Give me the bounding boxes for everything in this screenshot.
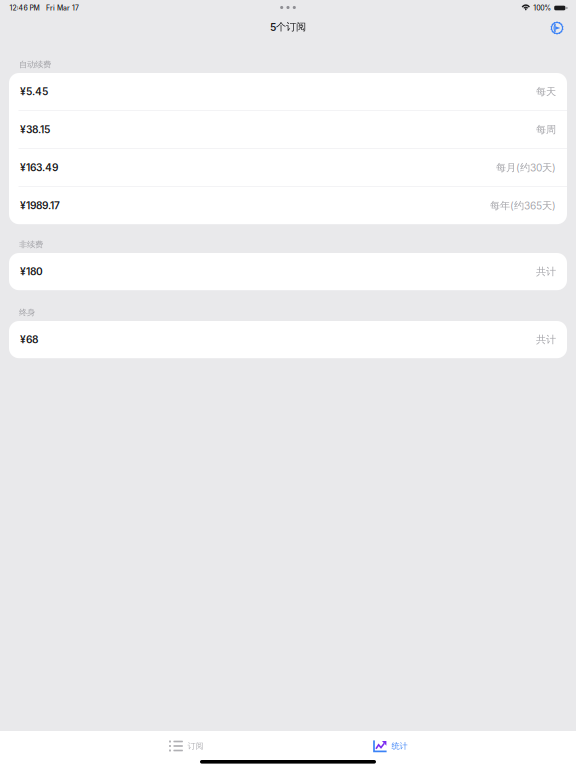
staticText: ¥38.15	[20, 123, 50, 136]
staticText: ¥163.49	[20, 161, 58, 174]
staticText: 每月(约30天)	[496, 161, 556, 174]
button[interactable]: ¥1989.17	[9, 187, 567, 224]
staticText: ¥68	[20, 333, 38, 346]
button[interactable]: ¥163.49	[9, 149, 567, 186]
button[interactable]: ¥38.15	[9, 111, 567, 148]
staticText: 每年(约365天)	[490, 199, 556, 212]
staticText: 100%	[533, 4, 551, 12]
button[interactable]: ¥68	[9, 321, 567, 358]
staticText: 12:46 PM	[9, 4, 39, 12]
staticText: 终身	[19, 307, 35, 318]
staticText: ¥180	[20, 265, 43, 278]
button[interactable]: 统计	[369, 735, 412, 757]
staticText: 5个订阅	[270, 21, 306, 33]
staticText: 每周	[536, 123, 556, 136]
staticText: 共计	[536, 333, 556, 346]
button[interactable]: Settings	[542, 13, 572, 43]
staticText: ¥1989.17	[20, 199, 60, 212]
button[interactable]: 订阅	[165, 735, 208, 757]
button[interactable]: ¥5.45	[9, 73, 567, 110]
button[interactable]: ¥180	[9, 253, 567, 290]
staticText: 每天	[536, 85, 556, 98]
staticText: 非续费	[19, 239, 43, 250]
staticText: 自动续费	[19, 59, 51, 70]
staticText: 订阅	[188, 741, 204, 751]
staticText: 共计	[536, 265, 556, 278]
staticText: ¥5.45	[20, 85, 48, 98]
staticText: Fri Mar 17	[46, 4, 79, 12]
staticText: 统计	[392, 741, 408, 751]
